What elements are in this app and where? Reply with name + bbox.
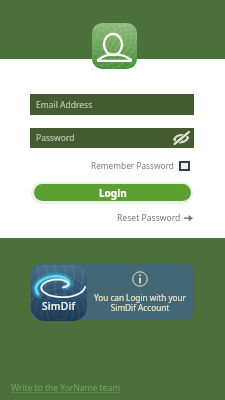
button[interactable]: Remember Password <box>91 157 190 174</box>
staticText: SimDif <box>42 299 76 313</box>
button[interactable]: Reset Password <box>117 211 193 225</box>
staticText: Login <box>99 186 127 200</box>
button[interactable]: Login <box>34 184 191 201</box>
button[interactable]: Password <box>30 128 194 148</box>
button[interactable]: Email Address <box>30 94 194 115</box>
staticText: You can Login with your SimDif Account <box>94 292 186 313</box>
staticText: Reset Password <box>117 212 181 224</box>
staticText: Email Address <box>36 99 93 111</box>
button[interactable]: Write to the YorName team <box>11 382 121 394</box>
button[interactable]: You can Login with your SimDif Account <box>30 264 194 320</box>
button[interactable]: Show password <box>171 130 191 146</box>
staticText: Remember Password <box>91 160 174 171</box>
staticText: Password <box>36 132 75 144</box>
